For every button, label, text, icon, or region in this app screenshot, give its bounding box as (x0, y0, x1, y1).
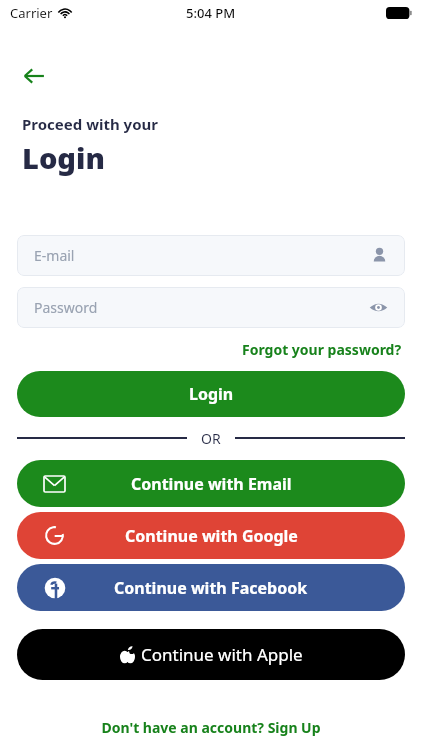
other: User (371, 247, 388, 264)
staticText: 5:04 PM (186, 4, 236, 22)
staticText: Don't have an account? Sign Up (101, 718, 321, 737)
other: Facebook (44, 577, 66, 599)
other: Email (44, 476, 65, 492)
other: Google (44, 525, 65, 546)
staticText: Password (34, 298, 369, 317)
button[interactable]: Google (17, 512, 405, 559)
button[interactable]: Forgot your password? (240, 338, 404, 361)
staticText: Continue with Facebook (114, 577, 308, 599)
button[interactable]: Don't have an account? Sign Up (97, 714, 325, 741)
other: Show password (369, 298, 388, 317)
other: Apple (120, 646, 135, 664)
button[interactable]: E-mail (17, 235, 405, 276)
button[interactable]: Login (17, 371, 405, 417)
staticText: E-mail (34, 246, 371, 265)
staticText: Continue with Email (131, 473, 292, 495)
button[interactable]: Apple (17, 629, 405, 680)
button[interactable]: Password (17, 287, 405, 328)
staticText: Continue with Google (125, 525, 298, 547)
staticText: Forgot your password? (242, 340, 402, 359)
staticText: Continue with Apple (141, 643, 303, 666)
button[interactable]: Facebook (17, 564, 405, 611)
staticText: Login (189, 383, 234, 405)
staticText: Login (22, 138, 105, 177)
staticText: Carrier (10, 4, 53, 22)
button[interactable]: Back (14, 56, 54, 96)
staticText: Proceed with your (22, 114, 159, 134)
button[interactable]: Email (17, 460, 405, 507)
staticText: OR (201, 429, 221, 448)
